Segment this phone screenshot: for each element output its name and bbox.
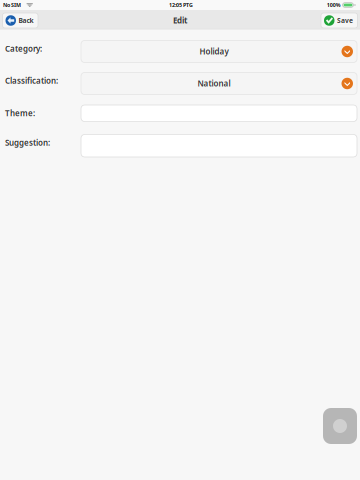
staticText: 100%: [327, 1, 341, 9]
button[interactable]: Holiday: [81, 40, 357, 62]
button[interactable]: AssistiveTouch: [323, 408, 357, 444]
staticText: Back: [18, 16, 33, 25]
button[interactable]: [81, 134, 357, 157]
staticText: Theme:: [5, 108, 35, 118]
staticText: 12:05 PTG: [169, 1, 193, 9]
staticText: Category:: [5, 43, 42, 54]
staticText: National: [197, 78, 230, 89]
button[interactable]: [81, 105, 357, 121]
staticText: Save: [337, 16, 353, 25]
staticText: Edit: [173, 15, 187, 26]
staticText: Holiday: [199, 46, 228, 57]
button[interactable]: Back: [2, 13, 38, 28]
staticText: No SIM: [3, 1, 21, 9]
button[interactable]: National: [81, 72, 357, 94]
staticText: Suggestion:: [5, 137, 50, 148]
button[interactable]: Save: [321, 13, 357, 28]
staticText: Classification:: [5, 75, 58, 86]
